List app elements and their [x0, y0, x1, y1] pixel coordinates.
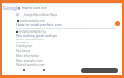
staticText: Videos	[33, 13, 42, 17]
staticText: More information	[16, 54, 40, 58]
staticText: News	[42, 13, 50, 17]
staticText: More examples here	[16, 59, 43, 63]
staticText: See details	[16, 40, 29, 43]
staticText: www.example.com	[20, 19, 45, 23]
staticText: recipes.example.org	[19, 30, 46, 34]
staticText: Step by step instructions	[16, 37, 44, 40]
staticText: Learn the simple steps for cooking perfe…	[16, 26, 117, 29]
staticText: Google	[3, 5, 21, 12]
staticText: How to cook perfect rice	[16, 22, 62, 27]
staticText: Rice basics	[16, 49, 31, 53]
staticText: Rice cooking guide and tips	[16, 34, 57, 38]
staticText: Images	[24, 13, 34, 17]
staticText: Related searches now	[16, 63, 45, 67]
staticText: All	[16, 13, 20, 17]
staticText: how to cook rice	[22, 6, 47, 10]
staticText: Maps	[50, 13, 58, 17]
staticText: Read more about it here	[16, 28, 44, 31]
staticText: Cooking tips	[16, 44, 33, 48]
